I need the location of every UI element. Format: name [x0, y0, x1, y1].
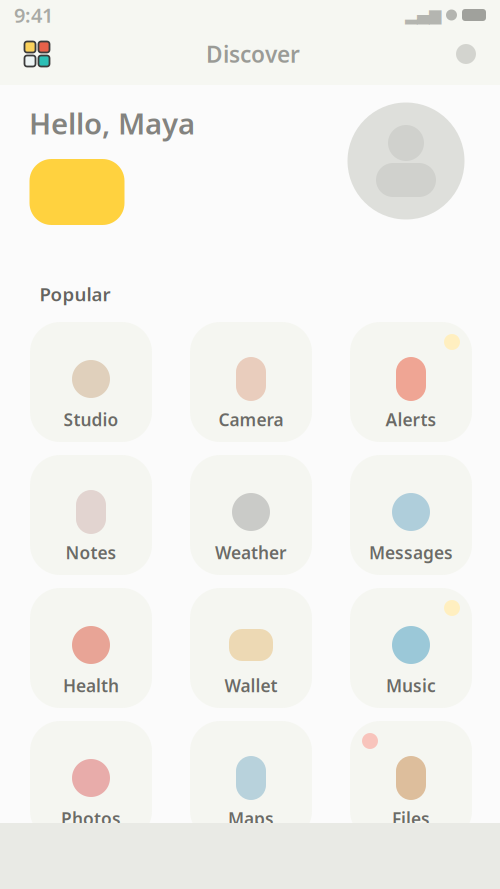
staticText: Discover [206, 39, 300, 69]
button[interactable]: Music [350, 588, 472, 708]
staticText: Weather [215, 541, 287, 564]
button[interactable]: Wallet [190, 588, 312, 708]
button[interactable]: Apps [24, 41, 50, 67]
staticText: Popular [39, 282, 110, 306]
staticText: Music [386, 674, 436, 697]
button[interactable]: Weather [190, 455, 312, 575]
staticText: Files [392, 807, 430, 830]
staticText: 9:41 [14, 2, 53, 28]
button[interactable]: Profile [347, 102, 464, 219]
staticText: ▂▄▆ [405, 6, 441, 24]
staticText: Messages [369, 541, 453, 564]
button[interactable]: Highlights [29, 159, 124, 225]
staticText: Alerts [385, 408, 436, 431]
button[interactable]: Photos [30, 721, 152, 841]
button[interactable]: Maps [190, 721, 312, 841]
button[interactable]: Studio [30, 322, 152, 442]
staticText: Health [63, 674, 119, 697]
staticText: Hello, Maya [29, 103, 195, 142]
button[interactable]: Files [350, 721, 472, 841]
staticText: Camera [218, 408, 283, 431]
staticText: Studio [63, 408, 118, 431]
staticText: Notes [65, 541, 116, 564]
button[interactable]: Search [456, 44, 476, 64]
staticText: Maps [228, 807, 274, 830]
button[interactable]: Camera [190, 322, 312, 442]
button[interactable]: Messages [350, 455, 472, 575]
staticText: Wallet [224, 674, 277, 697]
button[interactable]: Notes [30, 455, 152, 575]
button[interactable]: Health [30, 588, 152, 708]
staticText: Photos [61, 807, 121, 830]
button[interactable]: Alerts [350, 322, 472, 442]
